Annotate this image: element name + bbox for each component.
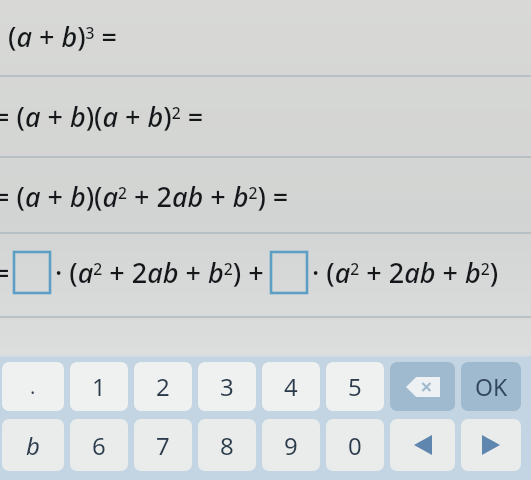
button[interactable]: 4 bbox=[262, 362, 320, 411]
staticText: 0 bbox=[348, 429, 362, 462]
button[interactable]: 5 bbox=[326, 362, 384, 411]
staticText: OK bbox=[475, 371, 508, 402]
staticText: 6 bbox=[92, 429, 106, 462]
button[interactable]: 3 bbox=[198, 362, 256, 411]
button[interactable]: Answer field 2 bbox=[271, 252, 307, 293]
staticText: 8 bbox=[220, 429, 234, 462]
staticText: · (a2 + 2ab + b2) + bbox=[55, 254, 271, 291]
staticText: 1 bbox=[92, 370, 106, 403]
staticText: = bbox=[0, 254, 10, 291]
button[interactable]: b bbox=[2, 419, 64, 471]
staticText: b bbox=[26, 429, 40, 462]
staticText: = (a + b)(a2 + 2ab + b2) = bbox=[0, 178, 289, 215]
staticText: 2 bbox=[156, 370, 170, 403]
button[interactable]: 1 bbox=[70, 362, 128, 411]
staticText: 3 bbox=[220, 370, 234, 403]
button[interactable]: 8 bbox=[198, 419, 256, 471]
button[interactable]: 7 bbox=[134, 419, 192, 471]
button[interactable]: 9 bbox=[262, 419, 320, 471]
staticText: 7 bbox=[156, 429, 170, 462]
button[interactable]: . bbox=[2, 362, 64, 411]
staticText: (a + b)3 = bbox=[8, 18, 118, 55]
button[interactable]: Move left bbox=[390, 419, 455, 471]
button[interactable]: 0 bbox=[326, 419, 384, 471]
staticText: 9 bbox=[284, 429, 298, 462]
button[interactable]: 2 bbox=[134, 362, 192, 411]
staticText: = (a + b)(a + b)2 = bbox=[0, 98, 204, 135]
button[interactable]: OK bbox=[461, 362, 521, 411]
staticText: 4 bbox=[284, 370, 298, 403]
staticText: · (a2 + 2ab + b2) bbox=[312, 254, 499, 291]
staticText: 5 bbox=[348, 370, 362, 403]
button[interactable]: Move right bbox=[461, 419, 521, 471]
button[interactable]: Answer field 1 bbox=[14, 252, 50, 293]
staticText: . bbox=[30, 373, 36, 400]
button[interactable]: 6 bbox=[70, 419, 128, 471]
button[interactable]: Backspace bbox=[390, 362, 455, 411]
